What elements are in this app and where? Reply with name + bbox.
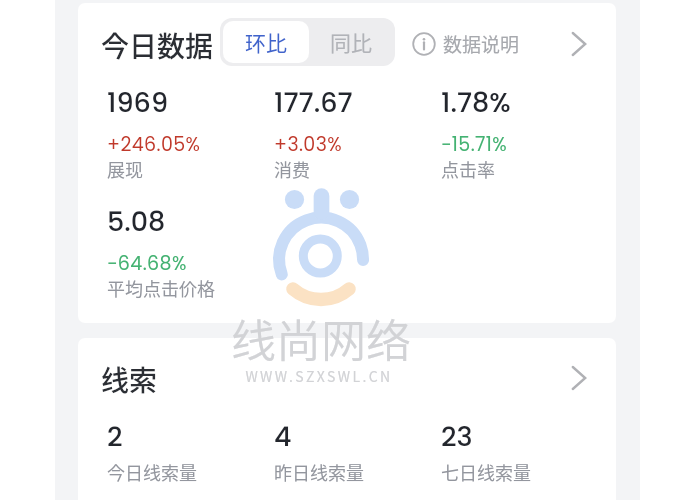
staticText: 展现: [107, 156, 143, 182]
staticText: 1969: [107, 84, 169, 122]
button[interactable]: More clues: [561, 360, 597, 396]
staticText: +3.03%: [274, 131, 343, 158]
staticText: 消费: [274, 156, 310, 182]
staticText: 5.08: [107, 203, 166, 241]
staticText: 23: [441, 418, 473, 456]
staticText: 昨日线索量: [274, 459, 364, 485]
staticText: 今日数据: [101, 25, 214, 66]
staticText: −64.68%: [107, 250, 187, 277]
staticText: 今日线索量: [107, 459, 197, 485]
staticText: 4: [274, 418, 292, 456]
staticText: 177.67: [274, 84, 353, 122]
staticText: 点击率: [441, 156, 495, 182]
staticText: 线尚网络: [231, 306, 412, 371]
button[interactable]: 环比: [223, 21, 309, 63]
staticText: +246.05%: [107, 131, 201, 158]
staticText: 2: [107, 418, 123, 456]
button[interactable]: Data details: [561, 26, 597, 62]
staticText: 七日线索量: [441, 459, 531, 485]
staticText: 数据说明: [443, 30, 520, 58]
staticText: 线索: [101, 359, 158, 400]
staticText: 1.78%: [441, 84, 511, 122]
staticText: 同比: [330, 27, 372, 57]
staticText: 平均点击价格: [107, 275, 215, 301]
staticText: 环比: [245, 27, 287, 57]
staticText: WWW.SZXSWL.CN: [229, 366, 409, 386]
button[interactable]: 数据说明: [412, 29, 520, 59]
staticText: −15.71%: [441, 131, 508, 158]
button[interactable]: 同比: [312, 18, 395, 66]
